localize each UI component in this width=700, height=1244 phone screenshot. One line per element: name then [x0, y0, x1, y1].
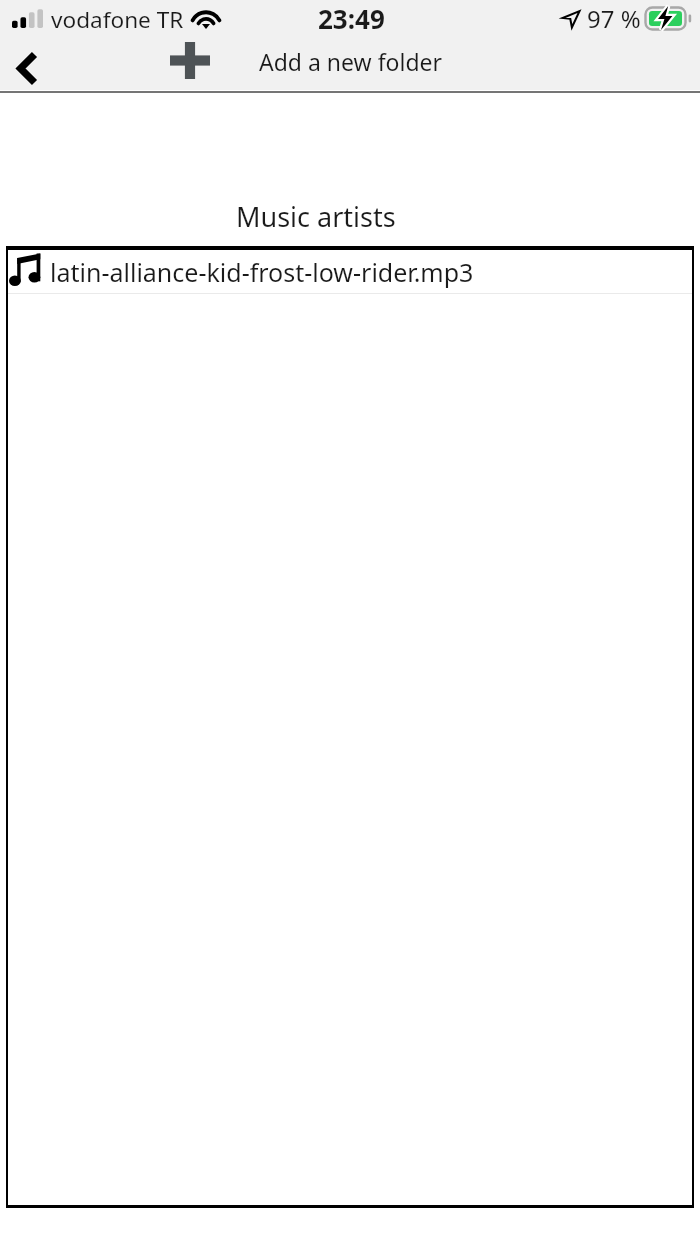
staticText: 97 % [587, 2, 641, 35]
staticText: Add a new folder [259, 46, 443, 77]
staticText: vodafone TR [51, 4, 184, 35]
button[interactable]: Add a new folder [154, 34, 226, 87]
button[interactable]: Back [0, 42, 54, 95]
staticText: Music artists [236, 198, 396, 235]
staticText: 23:49 [318, 1, 385, 36]
button[interactable]: latin-alliance-kid-frost-low-rider.mp3 [6, 250, 694, 293]
staticText: latin-alliance-kid-frost-low-rider.mp3 [50, 255, 474, 289]
